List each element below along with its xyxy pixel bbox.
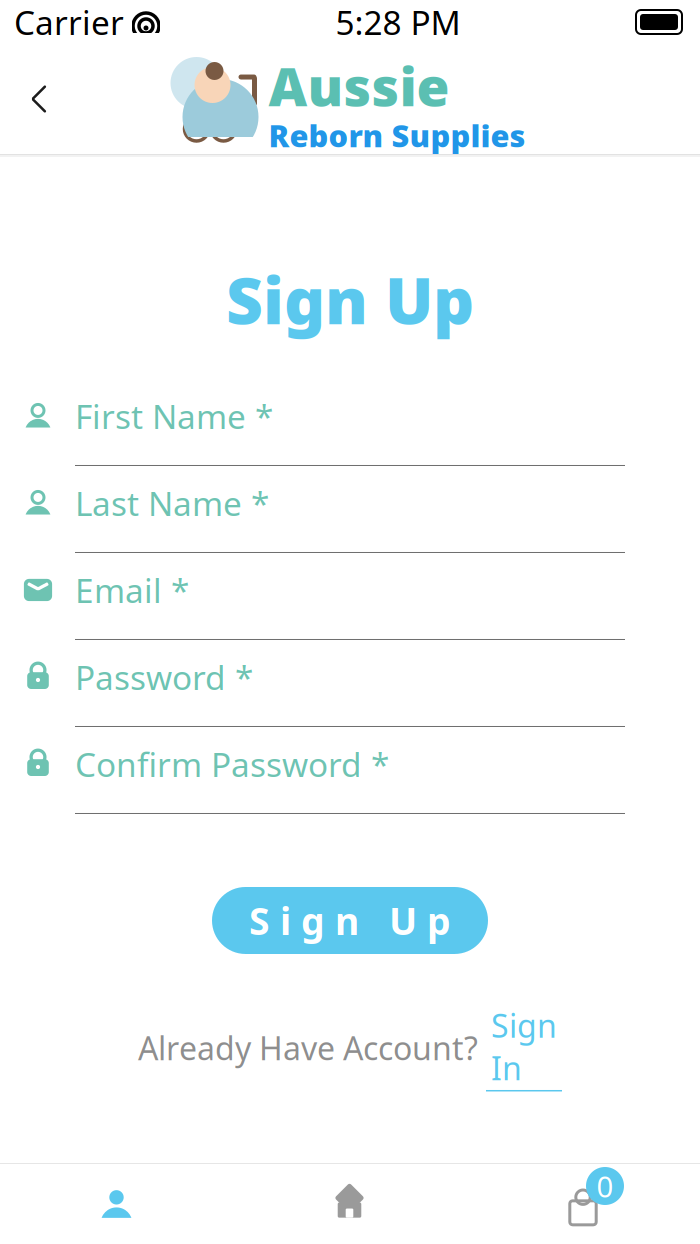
button[interactable]: Sign In xyxy=(486,1004,562,1091)
staticText: Already Have Account? xyxy=(138,1026,486,1069)
button[interactable]: Home xyxy=(233,1164,466,1244)
staticText: Sign In xyxy=(491,1004,557,1089)
staticText: Email * xyxy=(75,568,189,612)
button[interactable]: Profile xyxy=(0,1164,233,1244)
staticText: First Name * xyxy=(75,394,273,438)
staticText: 0 xyxy=(596,1166,613,1205)
staticText: Confirm Password * xyxy=(75,742,389,786)
staticText: Reborn Supplies xyxy=(268,115,525,156)
staticText: S i g n U p xyxy=(249,896,451,945)
staticText: Carrier xyxy=(14,0,124,44)
button[interactable]: Cart, 0 items xyxy=(466,1164,700,1244)
staticText: Password * xyxy=(75,655,253,699)
staticText: 5:28 PM xyxy=(335,0,460,44)
staticText: Aussie xyxy=(268,50,449,121)
staticText: Last Name * xyxy=(75,481,269,525)
button[interactable]: S i g n U p xyxy=(212,887,488,954)
staticText: Sign Up xyxy=(226,257,474,342)
button[interactable]: Back xyxy=(8,68,70,130)
